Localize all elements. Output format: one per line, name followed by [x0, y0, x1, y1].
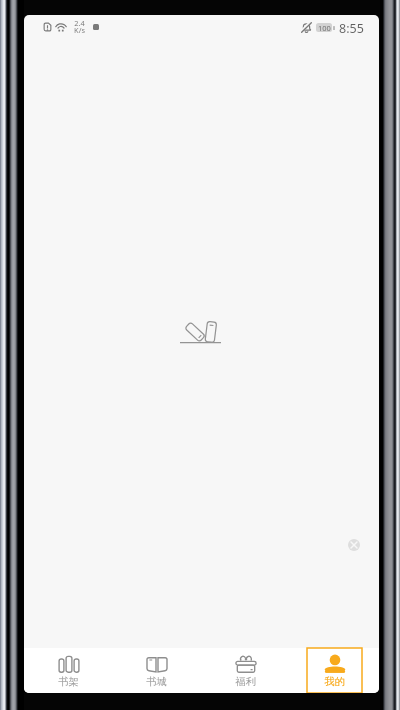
- staticText: 8:55: [339, 20, 364, 37]
- button[interactable]: 书架: [24, 648, 112, 693]
- staticText: 我的: [324, 675, 345, 688]
- button[interactable]: 书城: [112, 648, 201, 693]
- button[interactable]: 我的: [290, 648, 379, 693]
- button[interactable]: Close: [348, 539, 360, 551]
- staticText: 100: [318, 23, 331, 32]
- button[interactable]: 福利: [201, 648, 290, 693]
- staticText: 2.4: [74, 18, 85, 28]
- staticText: 福利: [235, 675, 256, 688]
- staticText: 书城: [146, 675, 167, 688]
- staticText: K/s: [74, 25, 85, 35]
- staticText: 书架: [58, 675, 79, 688]
